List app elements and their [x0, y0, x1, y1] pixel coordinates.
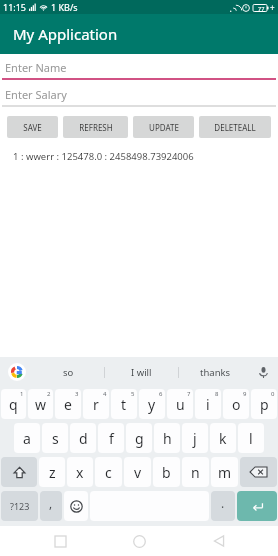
button[interactable]: s — [42, 423, 68, 453]
staticText: so — [63, 366, 74, 379]
button[interactable]: o — [223, 389, 249, 419]
button[interactable]: Backspace — [240, 457, 277, 487]
button[interactable]: Home — [119, 526, 159, 556]
staticText: p — [260, 395, 269, 414]
staticText: ?123 — [10, 500, 30, 512]
button[interactable]: SAVE — [7, 116, 58, 138]
button[interactable]: k — [210, 423, 236, 453]
staticText: r — [93, 395, 99, 414]
button[interactable]: c — [95, 457, 122, 487]
staticText: REFRESH — [79, 122, 113, 133]
button[interactable]: Recents — [40, 526, 80, 556]
staticText: 9 — [243, 390, 247, 398]
staticText: b — [162, 463, 171, 482]
button[interactable]: Enter Name — [0, 60, 278, 80]
staticText: 1 KB/s — [51, 1, 78, 13]
button[interactable]: ?123 — [1, 491, 38, 521]
staticText: e — [64, 395, 72, 414]
staticText: w — [35, 395, 47, 414]
staticText: o — [232, 395, 241, 414]
button[interactable]: I will — [105, 366, 178, 379]
button[interactable]: z — [39, 457, 65, 487]
button[interactable]: x — [67, 457, 93, 487]
staticText: u — [176, 395, 185, 414]
button[interactable]: Enter — [237, 491, 277, 521]
button[interactable]: f — [98, 423, 124, 453]
staticText: y — [148, 395, 156, 414]
staticText: , — [49, 495, 53, 511]
staticText: + — [270, 2, 275, 13]
staticText: n — [191, 463, 200, 482]
staticText: DELETEALL — [214, 122, 256, 133]
button[interactable]: p — [251, 389, 277, 419]
button[interactable]: a — [14, 423, 40, 453]
button[interactable]: Enter Salary — [0, 87, 278, 107]
button[interactable]: , — [40, 491, 62, 521]
staticText: s — [52, 429, 59, 448]
staticText: 7 — [187, 390, 191, 398]
button[interactable]: REFRESH — [63, 116, 128, 138]
button[interactable]: e — [55, 389, 81, 419]
staticText: d — [79, 429, 88, 448]
button[interactable]: l — [238, 423, 264, 453]
staticText: k — [219, 429, 227, 448]
staticText: thanks — [200, 366, 231, 379]
button[interactable]: w — [28, 389, 53, 419]
staticText: a — [23, 429, 31, 448]
staticText: t — [121, 395, 127, 414]
staticText: 2 — [47, 390, 51, 398]
button[interactable]: r — [83, 389, 109, 419]
button[interactable]: DELETEALL — [199, 116, 271, 138]
button[interactable]: Shift — [1, 457, 37, 487]
button[interactable]: Voice input — [255, 364, 271, 380]
button[interactable]: Back — [199, 526, 239, 556]
button[interactable]: m — [211, 457, 238, 487]
button[interactable]: UPDATE — [133, 116, 194, 138]
button[interactable]: b — [153, 457, 180, 487]
button[interactable]: t — [111, 389, 137, 419]
staticText: 4 — [103, 390, 107, 398]
staticText: m — [218, 463, 232, 482]
staticText: 3 — [75, 390, 79, 398]
staticText: 0 — [271, 390, 275, 398]
staticText: j — [193, 429, 197, 448]
button[interactable]: v — [124, 457, 151, 487]
staticText: . — [221, 495, 225, 511]
staticText: f — [109, 429, 114, 448]
button[interactable]: d — [70, 423, 96, 453]
staticText: q — [9, 395, 18, 414]
staticText: v — [134, 463, 142, 482]
button[interactable]: j — [182, 423, 208, 453]
button[interactable]: h — [154, 423, 180, 453]
button[interactable]: Emoji — [64, 491, 88, 521]
staticText: l — [249, 429, 253, 448]
staticText: c — [105, 463, 112, 482]
button[interactable]: y — [139, 389, 165, 419]
staticText: Enter Salary — [5, 87, 67, 102]
staticText: 8 — [215, 390, 219, 398]
staticText: UPDATE — [149, 122, 179, 133]
button[interactable]: i — [195, 389, 221, 419]
staticText: 77 — [258, 5, 265, 12]
button[interactable]: thanks — [179, 366, 252, 379]
staticText: 11:15 — [3, 1, 27, 13]
staticText: g — [135, 429, 144, 448]
button[interactable]: u — [167, 389, 193, 419]
button[interactable]: Google — [8, 363, 26, 381]
button[interactable]: q — [1, 389, 26, 419]
staticText: 6 — [159, 390, 163, 398]
button[interactable]: g — [126, 423, 152, 453]
button[interactable]: . — [211, 491, 235, 521]
staticText: SAVE — [23, 122, 42, 133]
staticText: 5 — [131, 390, 135, 398]
button[interactable]: n — [182, 457, 209, 487]
staticText: I will — [131, 366, 152, 379]
staticText: 1 : wwerr : 125478.0 : 2458498.73924006 — [13, 150, 194, 163]
staticText: i — [206, 395, 210, 414]
staticText: 1 — [20, 390, 24, 398]
button[interactable]: 1 : wwerr : 125478.0 : 2458498.73924006 — [0, 148, 278, 165]
staticText: z — [49, 463, 56, 482]
button[interactable]: so — [32, 366, 104, 379]
staticText: h — [163, 429, 172, 448]
